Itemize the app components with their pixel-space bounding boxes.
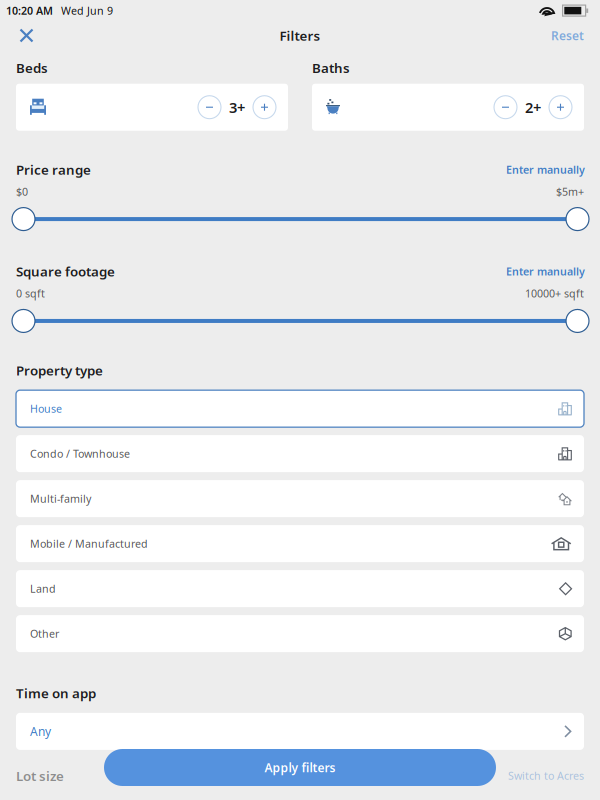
button[interactable]: Reset [551,21,600,49]
staticText: Lot size [16,767,64,785]
button[interactable]: Decrease [494,96,517,119]
staticText: Enter manually [506,162,585,177]
staticText: Time on app [16,684,96,702]
staticText: $5m+ [556,184,584,199]
staticText: 3+ [229,97,245,117]
staticText: 10000+ sqft [525,286,584,300]
button[interactable]: Enter manually [506,264,600,278]
button[interactable]: Other [0,615,600,652]
staticText: 2+ [525,97,541,117]
staticText: Baths [312,59,350,77]
staticText: Filters [279,27,320,44]
staticText: Other [30,627,59,641]
staticText: Switch to Acres [508,769,584,783]
button[interactable]: Decrease [198,96,221,119]
staticText: Condo / Townhouse [30,447,130,461]
staticText: 10:20 AM [6,3,53,18]
staticText: Land [30,582,56,596]
button[interactable]: Condo / Townhouse [0,435,600,472]
staticText: Price range [16,161,91,178]
staticText: Any [30,723,51,739]
button[interactable]: Any [0,713,600,750]
button[interactable]: Enter manually [506,162,600,177]
staticText: Multi-family [30,492,91,506]
staticText: House [30,402,62,416]
staticText: Property type [16,361,103,379]
button[interactable]: Apply filters [104,749,496,786]
button[interactable]: Close [0,23,45,48]
staticText: Square footage [16,263,115,280]
staticText: Wed Jun 9 [61,3,113,18]
staticText: $0 [16,184,28,199]
button[interactable]: Mobile / Manufactured [0,525,600,562]
button[interactable]: Land [0,570,600,607]
button[interactable]: Multi-family [0,480,600,517]
staticText: Beds [16,59,48,77]
button[interactable]: House [0,390,600,427]
staticText: 0 sqft [16,286,45,300]
staticText: Mobile / Manufactured [30,537,148,551]
staticText: Apply filters [264,759,335,775]
staticText: Reset [551,27,584,43]
button[interactable]: Increase [253,96,276,119]
staticText: Enter manually [506,264,585,278]
button[interactable]: Increase [549,96,572,119]
